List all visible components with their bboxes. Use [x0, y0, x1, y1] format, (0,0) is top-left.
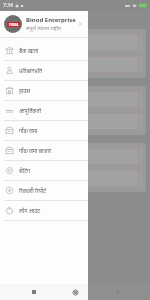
button[interactable]: रिकवरी रिपोर्ट [0, 181, 88, 200]
staticText: Binod Enterprise [26, 16, 76, 24]
staticText: हाउस [19, 87, 31, 94]
button[interactable]: TORIA [0, 11, 88, 37]
staticText: TORIA [9, 23, 19, 27]
button[interactable]: गाँव/जमा [0, 121, 88, 140]
staticText: रिकवरी रिपोर्ट [19, 187, 47, 194]
staticText: गाँव/जमा बाजार [19, 147, 52, 154]
button[interactable]: गाँव/जमा बाजार [0, 141, 88, 160]
staticText: बिक्री खाता [11, 175, 32, 182]
button[interactable]: हाउस [0, 81, 88, 100]
button[interactable]: आपूर्तिकर्ता [0, 101, 88, 120]
staticText: प्रतिष्ठानप्रति [19, 67, 43, 74]
button[interactable]: Home [67, 284, 83, 300]
staticText: चालू खाता [11, 153, 31, 160]
staticText: बैंक खाता [19, 47, 39, 54]
staticText: लॉग आउट [19, 207, 41, 214]
staticText: आपूर्तिकर्ता [19, 107, 42, 114]
staticText: संपूर्ण व्यापार राष्ट्रीय [26, 25, 61, 32]
staticText: गाँव/जमा [19, 127, 38, 134]
button[interactable]: प्रतिष्ठानप्रति [0, 61, 88, 80]
staticText: गाँव [11, 96, 19, 103]
staticText: सेटिंग [19, 167, 31, 174]
staticText: 7:34 [3, 2, 13, 9]
button[interactable]: लॉग आउट [0, 201, 88, 220]
button[interactable]: Recent apps [26, 284, 42, 300]
button[interactable]: बैंक खाता [0, 41, 88, 60]
button[interactable]: सेटिंग [0, 161, 88, 180]
staticText: जिला [11, 118, 21, 125]
